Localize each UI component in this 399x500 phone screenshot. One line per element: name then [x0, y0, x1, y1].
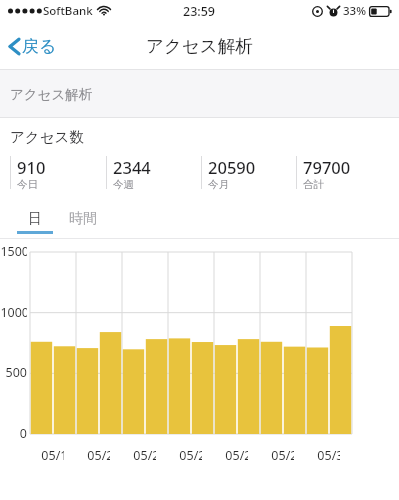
staticText: 1500 [0, 243, 27, 260]
staticText: 05/24 [179, 447, 202, 464]
staticText: 05/26 [225, 447, 248, 464]
staticText: 日 [28, 210, 42, 228]
staticText: 05/22 [133, 447, 156, 464]
staticText: アクセス数 [10, 128, 84, 146]
staticText: 33% [343, 3, 366, 19]
button[interactable]: 日 [17, 206, 53, 231]
button[interactable]: Back [0, 28, 69, 65]
button[interactable]: 2344 [106, 156, 201, 191]
staticText: 05/18 [41, 447, 64, 464]
staticText: 合計 [303, 178, 324, 191]
staticText: SoftBank [43, 3, 93, 19]
staticText: 79700 [303, 156, 351, 178]
staticText: 今週 [113, 178, 134, 191]
button[interactable]: 910 [10, 156, 106, 191]
staticText: アクセス解析 [146, 35, 253, 57]
staticText: 05/30 [317, 447, 340, 464]
staticText: 戻る [22, 36, 57, 57]
staticText: 500 [0, 364, 27, 381]
button[interactable]: 20590 [201, 156, 296, 191]
staticText: アクセス解析 [10, 86, 93, 103]
staticText: 23:59 [183, 3, 216, 20]
staticText: 910 [17, 156, 46, 178]
staticText: 今日 [17, 178, 38, 191]
button[interactable]: 時間 [63, 206, 103, 231]
staticText: 20590 [208, 156, 256, 178]
staticText: 0 [0, 425, 27, 442]
staticText: 05/28 [271, 447, 294, 464]
button[interactable]: 79700 [296, 156, 391, 191]
staticText: 今月 [208, 178, 229, 191]
staticText: 2344 [113, 156, 151, 178]
staticText: 時間 [69, 210, 97, 228]
staticText: 05/20 [87, 447, 110, 464]
staticText: 1000 [0, 304, 27, 321]
